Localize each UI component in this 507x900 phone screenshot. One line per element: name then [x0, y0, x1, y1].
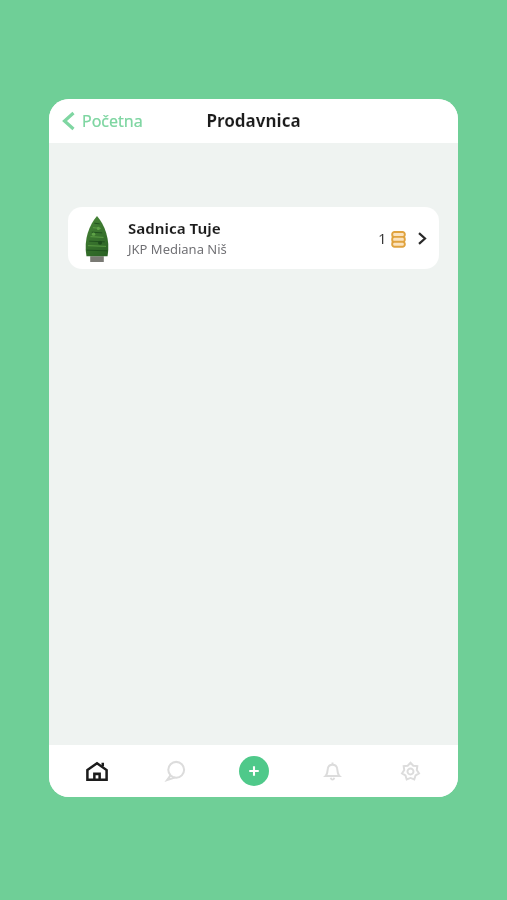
button[interactable]: Add	[224, 745, 284, 797]
button[interactable]: Sadnica Tuje	[68, 207, 439, 269]
button[interactable]: Početna	[57, 106, 147, 136]
staticText: Prodavnica	[49, 109, 458, 132]
button[interactable]: Messages	[145, 745, 205, 797]
button[interactable]: Home	[67, 745, 127, 797]
button[interactable]: Settings	[380, 745, 440, 797]
button[interactable]: Notifications	[302, 745, 362, 797]
staticText: 1	[378, 228, 387, 248]
staticText: Sadnica Tuje	[128, 218, 221, 238]
staticText: JKP Mediana Niš	[128, 240, 227, 258]
staticText: Početna	[82, 110, 143, 132]
